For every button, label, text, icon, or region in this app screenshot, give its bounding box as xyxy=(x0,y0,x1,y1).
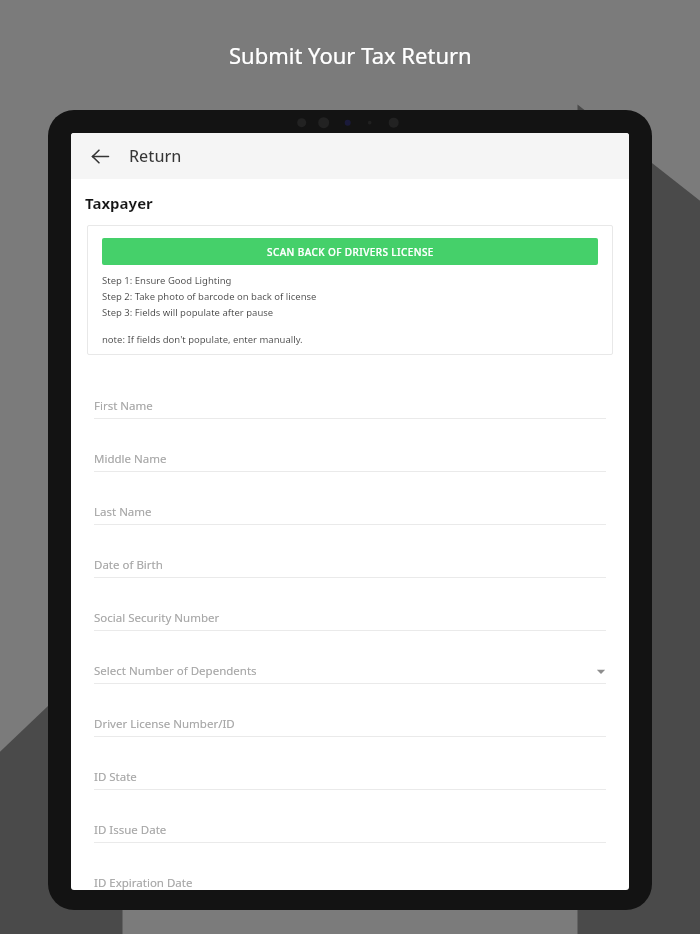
button[interactable]: First Name xyxy=(94,385,606,438)
staticText: Date of Birth xyxy=(94,557,163,573)
staticText: Step 1: Ensure Good Lighting xyxy=(102,274,232,287)
staticText: Driver License Number/ID xyxy=(94,716,235,732)
staticText: SCAN BACK OF DRIVERS LICENSE xyxy=(267,245,434,259)
button[interactable]: Last Name xyxy=(94,491,606,544)
staticText: note: If fields don't populate, enter ma… xyxy=(102,333,303,346)
staticText: First Name xyxy=(94,398,153,414)
staticText: Select Number of Dependents xyxy=(94,663,257,679)
staticText: ID Expiration Date xyxy=(94,875,193,890)
staticText: Submit Your Tax Return xyxy=(229,40,472,70)
button[interactable]: ID State xyxy=(94,756,606,809)
button[interactable]: Date of Birth xyxy=(94,544,606,597)
staticText: Last Name xyxy=(94,504,152,520)
staticText: ID Issue Date xyxy=(94,822,167,838)
staticText: ID State xyxy=(94,769,137,785)
button[interactable]: Select Number of Dependents xyxy=(94,650,606,703)
button[interactable]: Back xyxy=(83,139,117,173)
button[interactable]: Driver License Number/ID xyxy=(94,703,606,756)
staticText: Return xyxy=(129,145,182,167)
button[interactable]: Middle Name xyxy=(94,438,606,491)
button[interactable]: ID Expiration Date xyxy=(94,862,606,890)
staticText: Social Security Number xyxy=(94,610,220,626)
staticText: Taxpayer xyxy=(85,193,153,213)
button[interactable]: SCAN BACK OF DRIVERS LICENSE xyxy=(102,238,598,265)
button[interactable]: Social Security Number xyxy=(94,597,606,650)
button[interactable]: ID Issue Date xyxy=(94,809,606,862)
staticText: Middle Name xyxy=(94,451,167,467)
staticText: Step 2: Take photo of barcode on back of… xyxy=(102,290,317,303)
staticText: Step 3: Fields will populate after pause xyxy=(102,306,274,319)
